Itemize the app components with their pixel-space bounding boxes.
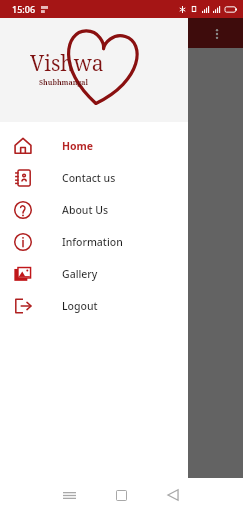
staticText: Contact us: [62, 171, 116, 185]
staticText: Shubhmangal: [39, 78, 88, 88]
staticText: Information: [62, 235, 123, 249]
staticText: Gallery: [62, 267, 98, 281]
staticText: 15:06: [12, 3, 36, 15]
button[interactable]: About Us: [0, 194, 188, 226]
button[interactable]: Recent apps: [44, 478, 95, 512]
button[interactable]: Gallery: [0, 258, 188, 290]
staticText: Home: [62, 139, 94, 153]
staticText: Vishwa: [30, 49, 104, 78]
staticText: 15:06: [12, 3, 36, 15]
button[interactable]: Logout: [0, 290, 188, 322]
staticText: About Us: [62, 203, 108, 217]
button[interactable]: Contact us: [0, 162, 188, 194]
button[interactable]: Information: [0, 226, 188, 258]
button[interactable]: Home: [95, 478, 147, 512]
button[interactable]: Home: [0, 130, 188, 162]
button[interactable]: Close navigation drawer: [0, 48, 243, 478]
button[interactable]: More options: [205, 22, 229, 46]
staticText: Logout: [62, 299, 98, 313]
button[interactable]: Back: [147, 478, 199, 512]
